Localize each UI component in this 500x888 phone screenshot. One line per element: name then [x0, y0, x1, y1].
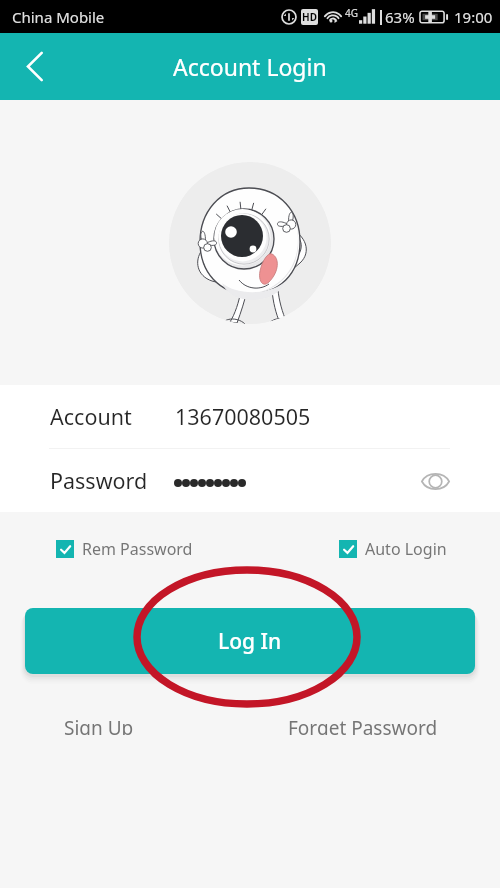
staticText: China Mobile [12, 7, 105, 27]
staticText: Auto Login [365, 538, 447, 560]
staticText: 19:00 [454, 7, 493, 27]
staticText: Account Login [173, 51, 327, 82]
staticText: Account [50, 402, 132, 431]
button[interactable]: Forget Password [274, 710, 452, 740]
button[interactable]: Rem Password [56, 538, 193, 560]
staticText: Sign Up [64, 715, 134, 735]
button[interactable]: Account [0, 385, 500, 448]
staticText: HD [302, 10, 317, 24]
button[interactable]: Show password [417, 463, 453, 499]
staticText: Forget Password [288, 715, 438, 735]
button[interactable]: Password [0, 449, 500, 512]
staticText: Log In [218, 627, 282, 656]
staticText: 63% [385, 7, 415, 27]
staticText: 13670080505 [175, 402, 311, 431]
button[interactable]: Log In [25, 608, 475, 674]
staticText: Rem Password [82, 538, 193, 560]
button[interactable]: Sign Up [50, 710, 148, 740]
staticText: Password [50, 466, 148, 495]
button[interactable]: Auto Login [339, 538, 447, 560]
staticText: 4G [345, 6, 358, 20]
button[interactable]: Back [0, 33, 70, 100]
